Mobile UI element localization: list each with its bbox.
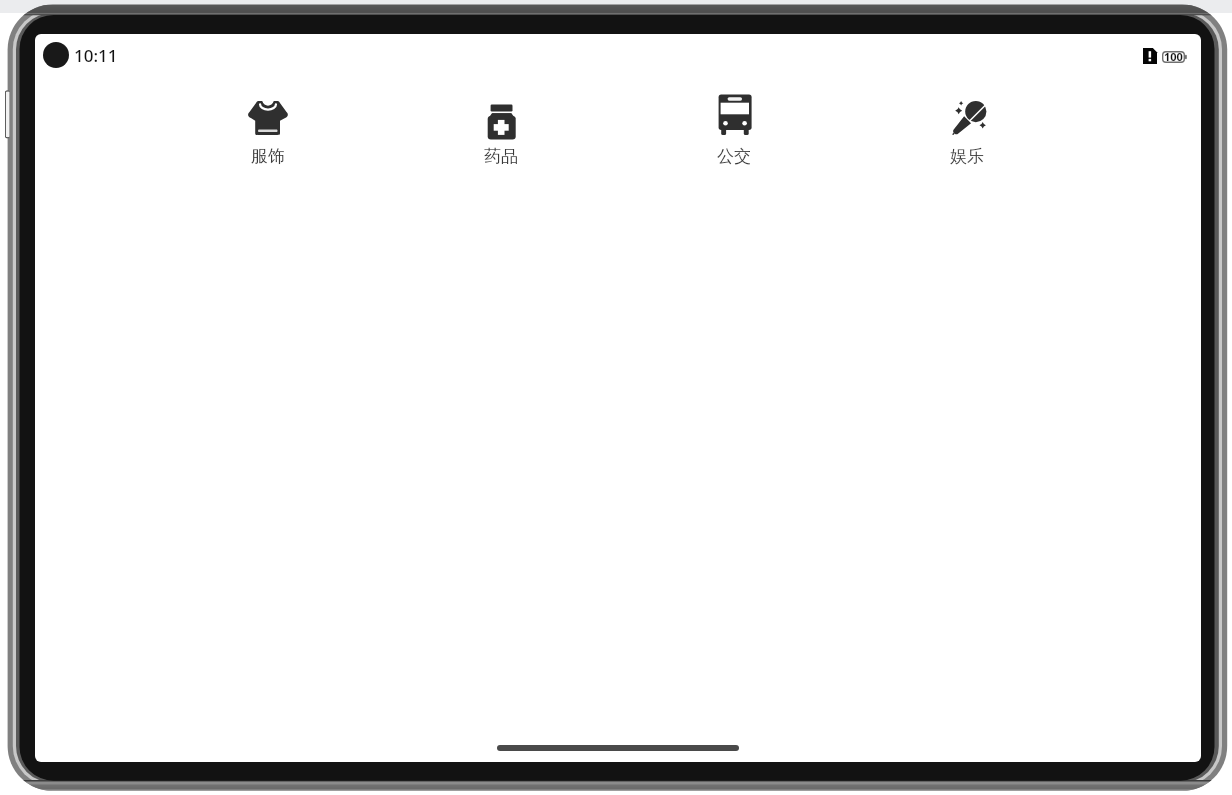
staticText: 药品 (484, 146, 518, 167)
staticText: 娱乐 (950, 146, 984, 167)
staticText: 服饰 (251, 146, 285, 167)
staticText: 10:11 (74, 44, 118, 67)
button[interactable]: Entertainment (850, 93, 1083, 167)
other: SIM card alert (1143, 48, 1157, 64)
button[interactable]: Clothing (151, 93, 384, 167)
button[interactable]: Medicine (384, 93, 617, 167)
staticText: 公交 (717, 146, 751, 167)
staticText: 100 (1164, 49, 1183, 64)
button[interactable]: Bus (617, 93, 850, 167)
